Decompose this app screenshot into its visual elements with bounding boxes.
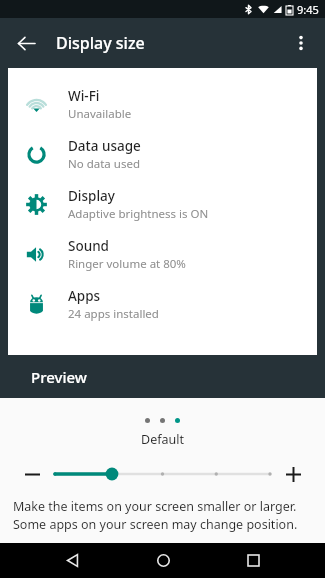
staticText: Unavailable [68,106,132,122]
staticText: Sound [68,237,109,255]
staticText: 24 apps installed [68,306,159,322]
button[interactable]: More options [282,24,320,62]
button[interactable]: Sound [8,229,317,279]
button[interactable]: Recent apps [235,543,271,578]
staticText: Preview [31,367,87,387]
button[interactable]: Wi-Fi [8,79,317,129]
button[interactable]: Apps [8,279,317,329]
button[interactable]: Back [54,543,90,578]
staticText: Ringer volume at 80% [68,256,186,272]
button[interactable]: Data usage [8,129,317,179]
staticText: Apps [68,287,101,305]
staticText: Adaptive brightness is ON [68,206,209,222]
button[interactable]: Display [8,179,317,229]
button[interactable]: Back [7,24,45,62]
staticText: Default [141,431,184,448]
button[interactable]: Increase display size [281,462,305,486]
staticText: Wi-Fi [68,87,100,105]
staticText: Display size [56,32,145,54]
button[interactable]: Home [145,543,181,578]
staticText: Some apps on your screen may change posi… [13,516,298,533]
staticText: 9:45 [297,2,319,17]
staticText: Display [68,187,115,205]
button[interactable]: Decrease display size [20,462,44,486]
staticText: No data used [68,156,140,172]
button[interactable] [55,461,270,487]
staticText: Data usage [68,137,141,155]
staticText: Make the items on your screen smaller or… [13,498,297,515]
